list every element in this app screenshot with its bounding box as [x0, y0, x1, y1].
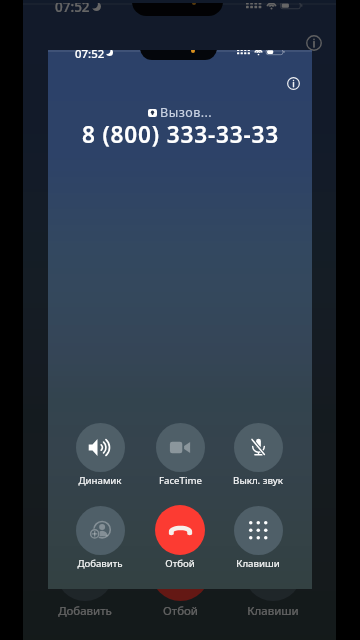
staticText: Отбой — [163, 603, 198, 619]
staticText: FaceTime — [154, 505, 206, 521]
button[interactable]: Call info — [287, 77, 300, 90]
button[interactable]: Клавиши — [223, 543, 323, 619]
staticText: 07:52 — [55, 3, 90, 16]
button[interactable]: Динамик — [35, 445, 135, 521]
staticText: Клавиши — [247, 603, 299, 619]
staticText: 07:52 — [75, 50, 105, 62]
button[interactable]: Выкл. звук — [223, 445, 323, 521]
staticText: Добавить — [58, 603, 112, 619]
button[interactable]: FaceTime — [138, 423, 222, 487]
button[interactable]: Добавить — [58, 506, 142, 570]
staticText: Клавиши — [236, 557, 280, 570]
staticText: Выкл. звук — [243, 505, 303, 521]
staticText: Вызов... — [160, 104, 213, 121]
button[interactable]: Выкл. звук — [216, 423, 300, 487]
button[interactable]: Call info — [306, 35, 322, 51]
button[interactable]: FaceTime — [130, 445, 230, 521]
staticText: Добавить — [77, 557, 123, 570]
button[interactable]: Добавить — [35, 543, 135, 619]
staticText: Динамик — [78, 474, 122, 487]
staticText: 8 (800) 333-33-33 — [82, 119, 279, 150]
button[interactable]: Отбой — [138, 505, 222, 570]
staticText: Отбой — [165, 557, 195, 570]
staticText: 8 (800) 333-33-33 — [63, 85, 297, 121]
button[interactable]: Отбой — [130, 542, 230, 619]
staticText: Динамик — [59, 505, 111, 521]
button[interactable]: Клавиши — [216, 506, 300, 570]
button[interactable]: Динамик — [58, 423, 142, 487]
staticText: FaceTime — [159, 474, 202, 487]
staticText: Выкл. звук — [233, 474, 283, 487]
